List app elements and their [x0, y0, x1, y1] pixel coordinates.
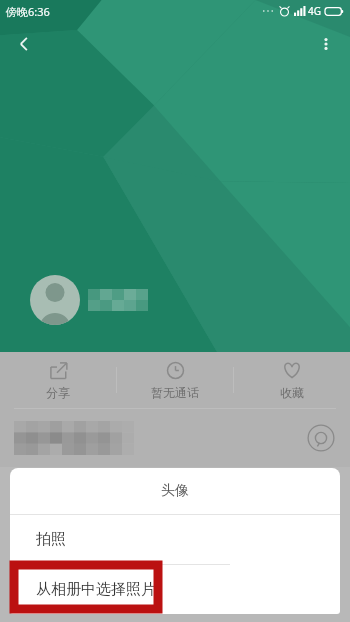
- button[interactable]: More options: [302, 22, 350, 66]
- staticText: 傍晚6:36: [6, 4, 50, 19]
- button[interactable]: 暂无通话: [117, 352, 233, 408]
- staticText: 头像: [161, 482, 189, 500]
- button[interactable]: 分享: [0, 352, 116, 408]
- button[interactable]: 收藏: [234, 352, 350, 408]
- staticText: 收藏: [280, 385, 304, 400]
- button[interactable]: Message: [306, 423, 336, 453]
- staticText: 暂无通话: [151, 385, 199, 400]
- button[interactable]: Back: [0, 22, 48, 66]
- button[interactable]: Avatar: [30, 275, 80, 325]
- staticText: 拍照: [36, 530, 66, 549]
- staticText: 4G: [308, 4, 321, 18]
- button[interactable]: 拍照: [10, 515, 340, 564]
- staticText: 分享: [46, 385, 70, 400]
- staticText: 从相册中选择照片: [36, 580, 156, 599]
- button[interactable]: 从相册中选择照片: [10, 565, 340, 614]
